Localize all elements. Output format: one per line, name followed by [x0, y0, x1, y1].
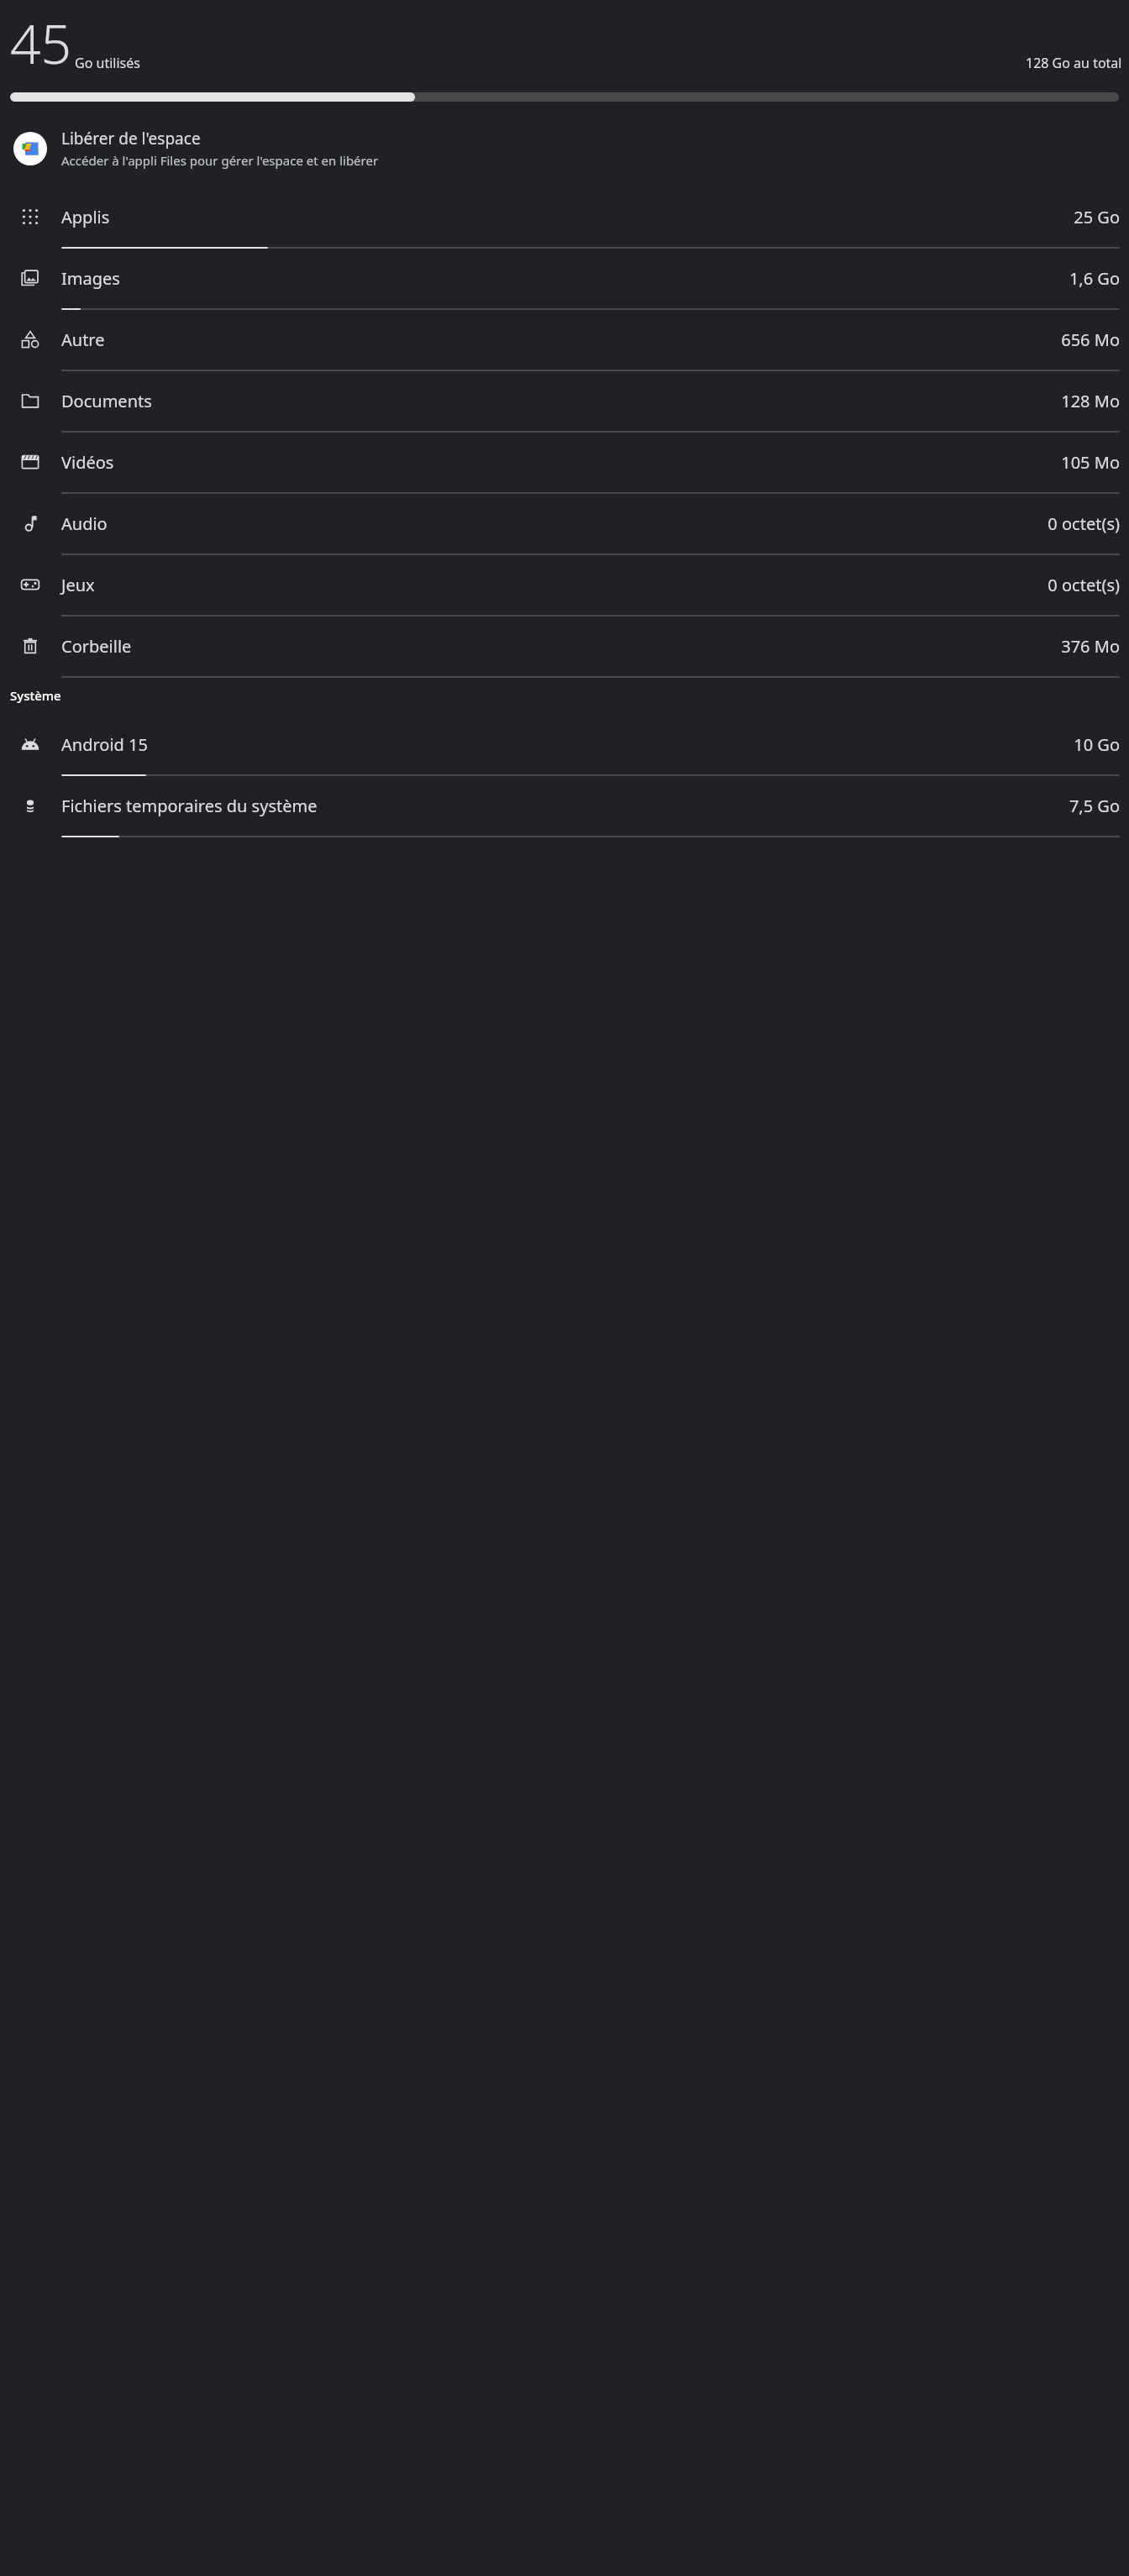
- staticText: Go utilisés: [75, 54, 140, 72]
- button[interactable]: Applis: [0, 187, 1129, 249]
- staticText: 0 octet(s): [1048, 574, 1120, 596]
- staticText: 25 Go: [1074, 206, 1120, 228]
- button[interactable]: Autre: [0, 310, 1129, 371]
- staticText: 7,5 Go: [1069, 795, 1120, 817]
- staticText: Images: [61, 267, 120, 290]
- staticText: Libérer de l'espace: [61, 128, 201, 150]
- staticText: 45: [10, 7, 72, 80]
- staticText: 376 Mo: [1061, 635, 1120, 658]
- staticText: Fichiers temporaires du système: [61, 795, 318, 817]
- staticText: 128 Go au total: [1026, 54, 1122, 72]
- staticText: Système: [10, 687, 61, 704]
- button[interactable]: Corbeille: [0, 616, 1129, 678]
- staticText: Jeux: [61, 574, 95, 596]
- button[interactable]: Images: [0, 249, 1129, 310]
- staticText: Accéder à l'appli Files pour gérer l'esp…: [61, 152, 379, 169]
- button[interactable]: Android 15: [0, 715, 1129, 776]
- button[interactable]: Vidéos: [0, 433, 1129, 494]
- staticText: Android 15: [61, 733, 148, 756]
- staticText: Corbeille: [61, 635, 132, 658]
- staticText: Documents: [61, 390, 152, 412]
- button[interactable]: Libérer de l'espace: [0, 123, 1129, 174]
- staticText: 1,6 Go: [1069, 267, 1120, 290]
- button[interactable]: Fichiers temporaires du système: [0, 776, 1129, 837]
- button[interactable]: Audio: [0, 494, 1129, 555]
- staticText: 105 Mo: [1061, 451, 1120, 474]
- button[interactable]: Documents: [0, 371, 1129, 433]
- staticText: 128 Mo: [1061, 390, 1120, 412]
- staticText: Vidéos: [61, 451, 114, 474]
- staticText: 656 Mo: [1061, 328, 1120, 351]
- staticText: Applis: [61, 206, 110, 228]
- staticText: Audio: [61, 512, 108, 535]
- button[interactable]: Jeux: [0, 555, 1129, 616]
- staticText: 0 octet(s): [1048, 512, 1120, 535]
- staticText: 10 Go: [1074, 733, 1120, 756]
- staticText: Autre: [61, 328, 105, 351]
